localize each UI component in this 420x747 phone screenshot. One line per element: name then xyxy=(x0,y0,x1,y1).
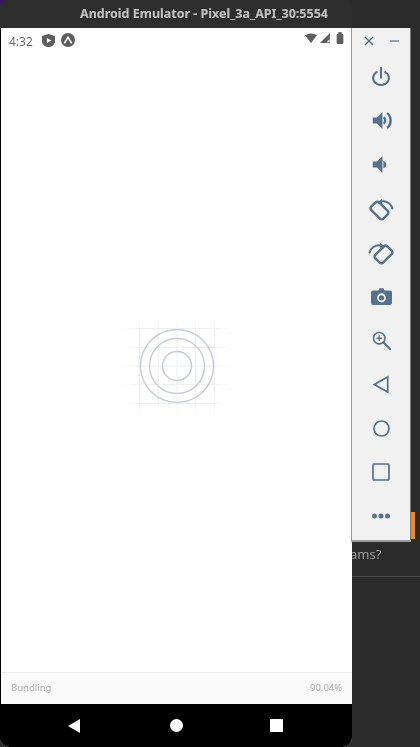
button[interactable]: Recents xyxy=(252,704,300,747)
button[interactable]: Power xyxy=(362,57,400,95)
button[interactable]: Zoom xyxy=(362,321,400,359)
staticText: Bundling xyxy=(11,681,52,694)
staticText: 90.04% xyxy=(310,681,343,694)
button[interactable]: Home xyxy=(152,704,200,747)
staticText: Android Emulator - Pixel_3a_API_30:5554 xyxy=(80,5,328,22)
button[interactable]: Home xyxy=(362,409,400,447)
button[interactable]: Back xyxy=(362,365,400,403)
button[interactable]: Rotate left xyxy=(362,189,400,227)
button[interactable]: Overview xyxy=(362,453,400,491)
button[interactable]: Rotate right xyxy=(362,233,400,271)
button[interactable]: More xyxy=(362,497,400,535)
button[interactable]: Take screenshot xyxy=(362,277,400,315)
button[interactable]: Close xyxy=(359,31,379,51)
button[interactable]: Volume up xyxy=(362,101,400,139)
button[interactable]: Back xyxy=(50,704,98,747)
button[interactable]: Volume down xyxy=(362,145,400,183)
staticText: ams? xyxy=(350,545,382,563)
staticText: 4:32 xyxy=(9,33,33,49)
button[interactable]: Minimize xyxy=(384,31,404,51)
